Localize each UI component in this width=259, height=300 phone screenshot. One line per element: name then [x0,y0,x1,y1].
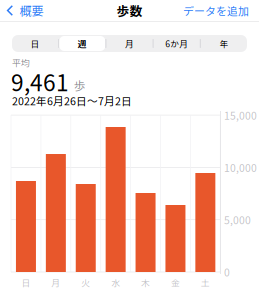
staticText: 火 [81,276,90,289]
staticText: 概要 [19,2,43,19]
staticText: 6か月 [165,37,188,50]
button[interactable]: 週 [59,35,105,52]
staticText: 年 [219,37,228,50]
staticText: 10,000 [224,160,257,175]
staticText: 9,461 [11,65,69,98]
button[interactable]: 日 [12,35,58,52]
staticText: 歩 [74,77,85,93]
staticText: 日 [31,37,40,50]
staticText: 木 [141,276,150,289]
staticText: 水 [111,276,120,289]
staticText: 平均 [12,56,30,69]
staticText: 週 [78,37,87,50]
button[interactable]: 年 [201,35,247,52]
staticText: 月 [125,37,134,50]
staticText: 2022年6月26日〜7月2日 [12,93,132,108]
staticText: 土 [201,276,210,289]
staticText: 15,000 [224,108,257,123]
staticText: 日 [21,276,30,289]
button[interactable]: 月 [106,35,153,52]
button[interactable]: 概要 [0,0,62,21]
staticText: 歩数 [116,1,142,20]
button[interactable]: データを追加 [149,0,259,21]
staticText: 0 [224,264,230,280]
staticText: 5,000 [224,212,251,227]
staticText: 月 [51,276,60,289]
staticText: 金 [171,276,180,289]
button[interactable]: 6か月 [154,35,200,52]
staticText: データを追加 [183,3,249,18]
